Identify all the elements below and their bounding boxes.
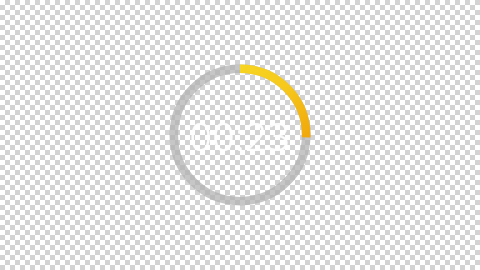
button[interactable]: Timer progress 00:23 (160, 55, 320, 215)
staticText: 00:23 (189, 109, 291, 162)
